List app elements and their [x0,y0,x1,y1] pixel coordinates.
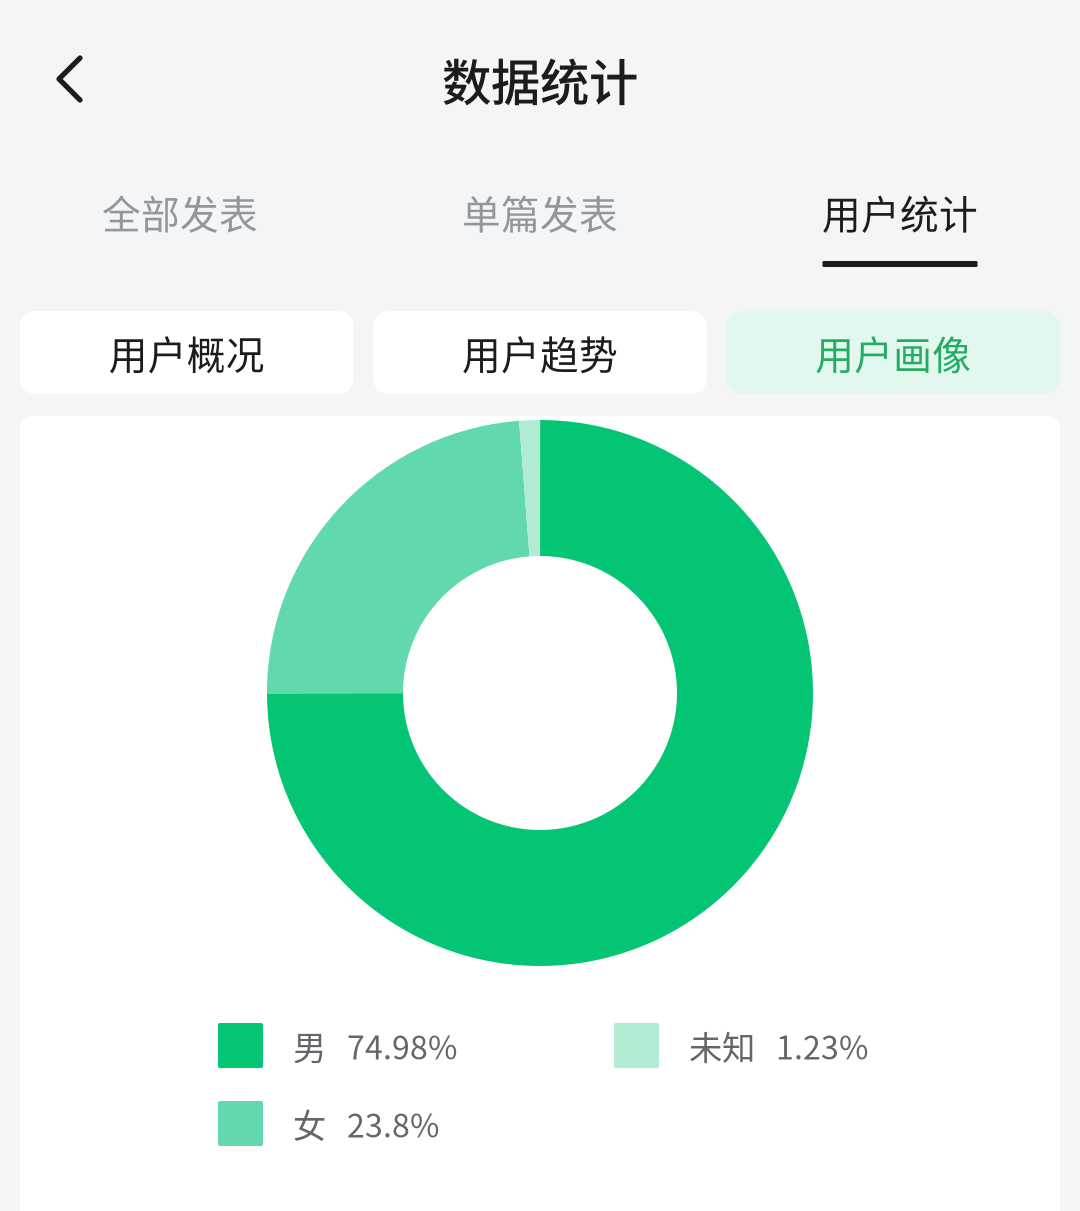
staticText: 数据统计 [442,43,638,115]
staticText: 男 [293,1021,326,1070]
button[interactable]: 用户趋势 [373,311,707,394]
staticText: 未知 [689,1021,755,1070]
staticText: 1.23% [776,1022,868,1069]
staticText: 全部发表 [102,184,258,240]
button[interactable]: 单篇发表 [360,158,720,311]
staticText: 用户概况 [109,324,265,380]
staticText: 74.98% [347,1022,457,1069]
staticText: 用户统计 [822,184,978,240]
staticText: 女 [293,1099,326,1148]
button[interactable]: 用户统计 [720,158,1080,311]
staticText: 单篇发表 [462,184,618,240]
button[interactable]: 用户画像 [727,311,1060,394]
button[interactable]: 全部发表 [0,158,360,311]
staticText: 用户趋势 [462,324,618,380]
button[interactable]: 用户概况 [20,311,353,394]
button[interactable]: Back [0,29,123,129]
staticText: 23.8% [347,1100,439,1147]
staticText: 用户画像 [815,324,971,380]
